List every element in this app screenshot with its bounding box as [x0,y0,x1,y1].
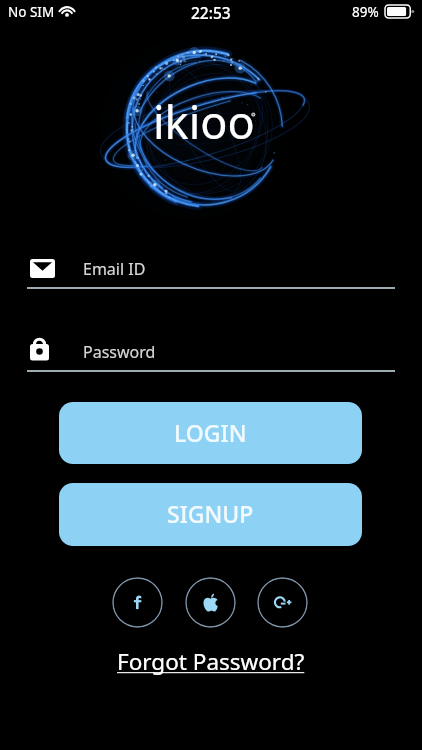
staticText: LOGIN [174,417,247,448]
staticText: Forgot Password? [117,646,305,677]
staticText: ikioo [153,91,255,152]
button[interactable]: Password [0,331,422,379]
staticText: No SIM [8,3,55,21]
staticText: 89% [352,3,379,21]
button[interactable]: SIGNUP [59,483,362,546]
button[interactable]: Forgot Password? [117,646,305,677]
staticText: Email ID [83,258,146,280]
button[interactable]: Google Plus [257,577,308,628]
button[interactable]: LOGIN [59,402,362,464]
button[interactable]: Email ID [0,248,422,296]
staticText: Password [83,341,156,363]
button[interactable]: Facebook [112,577,163,628]
staticText: 22:53 [191,2,231,23]
button[interactable]: Apple [185,577,236,628]
staticText: SIGNUP [167,498,254,529]
